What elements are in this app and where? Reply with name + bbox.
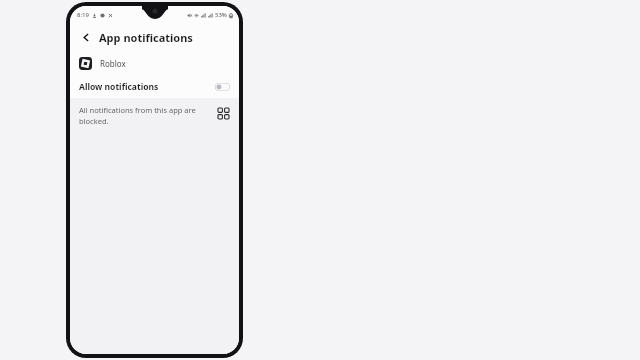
staticText: All notifications from this app are bloc… bbox=[79, 105, 211, 126]
button[interactable]: Grid view bbox=[215, 105, 231, 121]
button[interactable]: Roblox bbox=[70, 50, 239, 76]
staticText: Roblox bbox=[100, 58, 126, 69]
other: Allow notifications toggle bbox=[215, 83, 230, 91]
staticText: Allow notifications bbox=[79, 81, 159, 93]
staticText: 8:19 bbox=[77, 11, 89, 19]
button[interactable]: Back bbox=[78, 29, 94, 45]
staticText: 53% bbox=[215, 11, 227, 19]
staticText: App notifications bbox=[99, 30, 193, 45]
button[interactable]: Allow notifications bbox=[70, 76, 239, 98]
